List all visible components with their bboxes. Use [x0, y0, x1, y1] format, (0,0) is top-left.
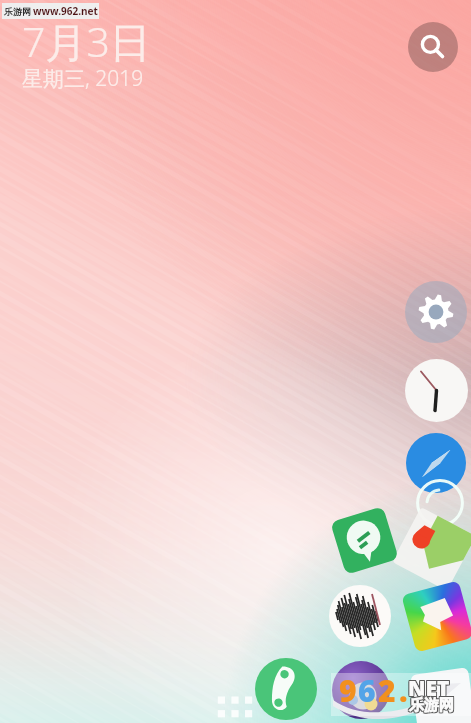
button[interactable]: Clock [405, 359, 468, 422]
staticText: 乐游网 [408, 695, 453, 714]
staticText: 9 [339, 670, 357, 711]
staticText: 乐游网 [408, 696, 453, 715]
button[interactable]: Notes [410, 667, 471, 723]
staticText: 乐游网 [408, 697, 453, 716]
staticText: NET [407, 673, 449, 702]
staticText: 乐游网 [410, 696, 455, 715]
staticText: 乐游网 [4, 6, 31, 17]
button[interactable]: Maps [392, 507, 471, 591]
button[interactable]: Settings [405, 281, 467, 343]
staticText: 乐游网 [409, 695, 454, 714]
staticText: 7月3日 [22, 13, 151, 69]
button[interactable]: Recorder [329, 585, 391, 647]
button[interactable]: Search [408, 22, 458, 72]
staticText: www.962.net [33, 4, 98, 18]
staticText: NET [408, 673, 450, 702]
staticText: NET [409, 674, 451, 703]
staticText: . [399, 670, 408, 711]
button[interactable]: Messages [330, 506, 399, 575]
staticText: NET [409, 673, 451, 702]
staticText: 乐游网 [410, 695, 455, 714]
staticText: 星期三, 2019 [22, 64, 144, 93]
button[interactable]: Camera [416, 479, 464, 527]
staticText: NET [407, 674, 449, 703]
button[interactable]: All apps [216, 695, 254, 723]
staticText: 6 [358, 670, 376, 711]
staticText: 乐游网 [409, 697, 454, 716]
staticText: 乐游网 [410, 697, 455, 716]
staticText: NET [408, 675, 450, 704]
staticText: 乐游网 [409, 696, 454, 715]
button[interactable]: Phone [255, 658, 317, 720]
button[interactable]: Browser [406, 433, 466, 493]
staticText: 2 [378, 670, 396, 711]
staticText: NET [409, 675, 451, 704]
staticText: NET [407, 675, 449, 704]
staticText: NET [408, 674, 450, 703]
button[interactable]: Gallery [401, 580, 471, 653]
